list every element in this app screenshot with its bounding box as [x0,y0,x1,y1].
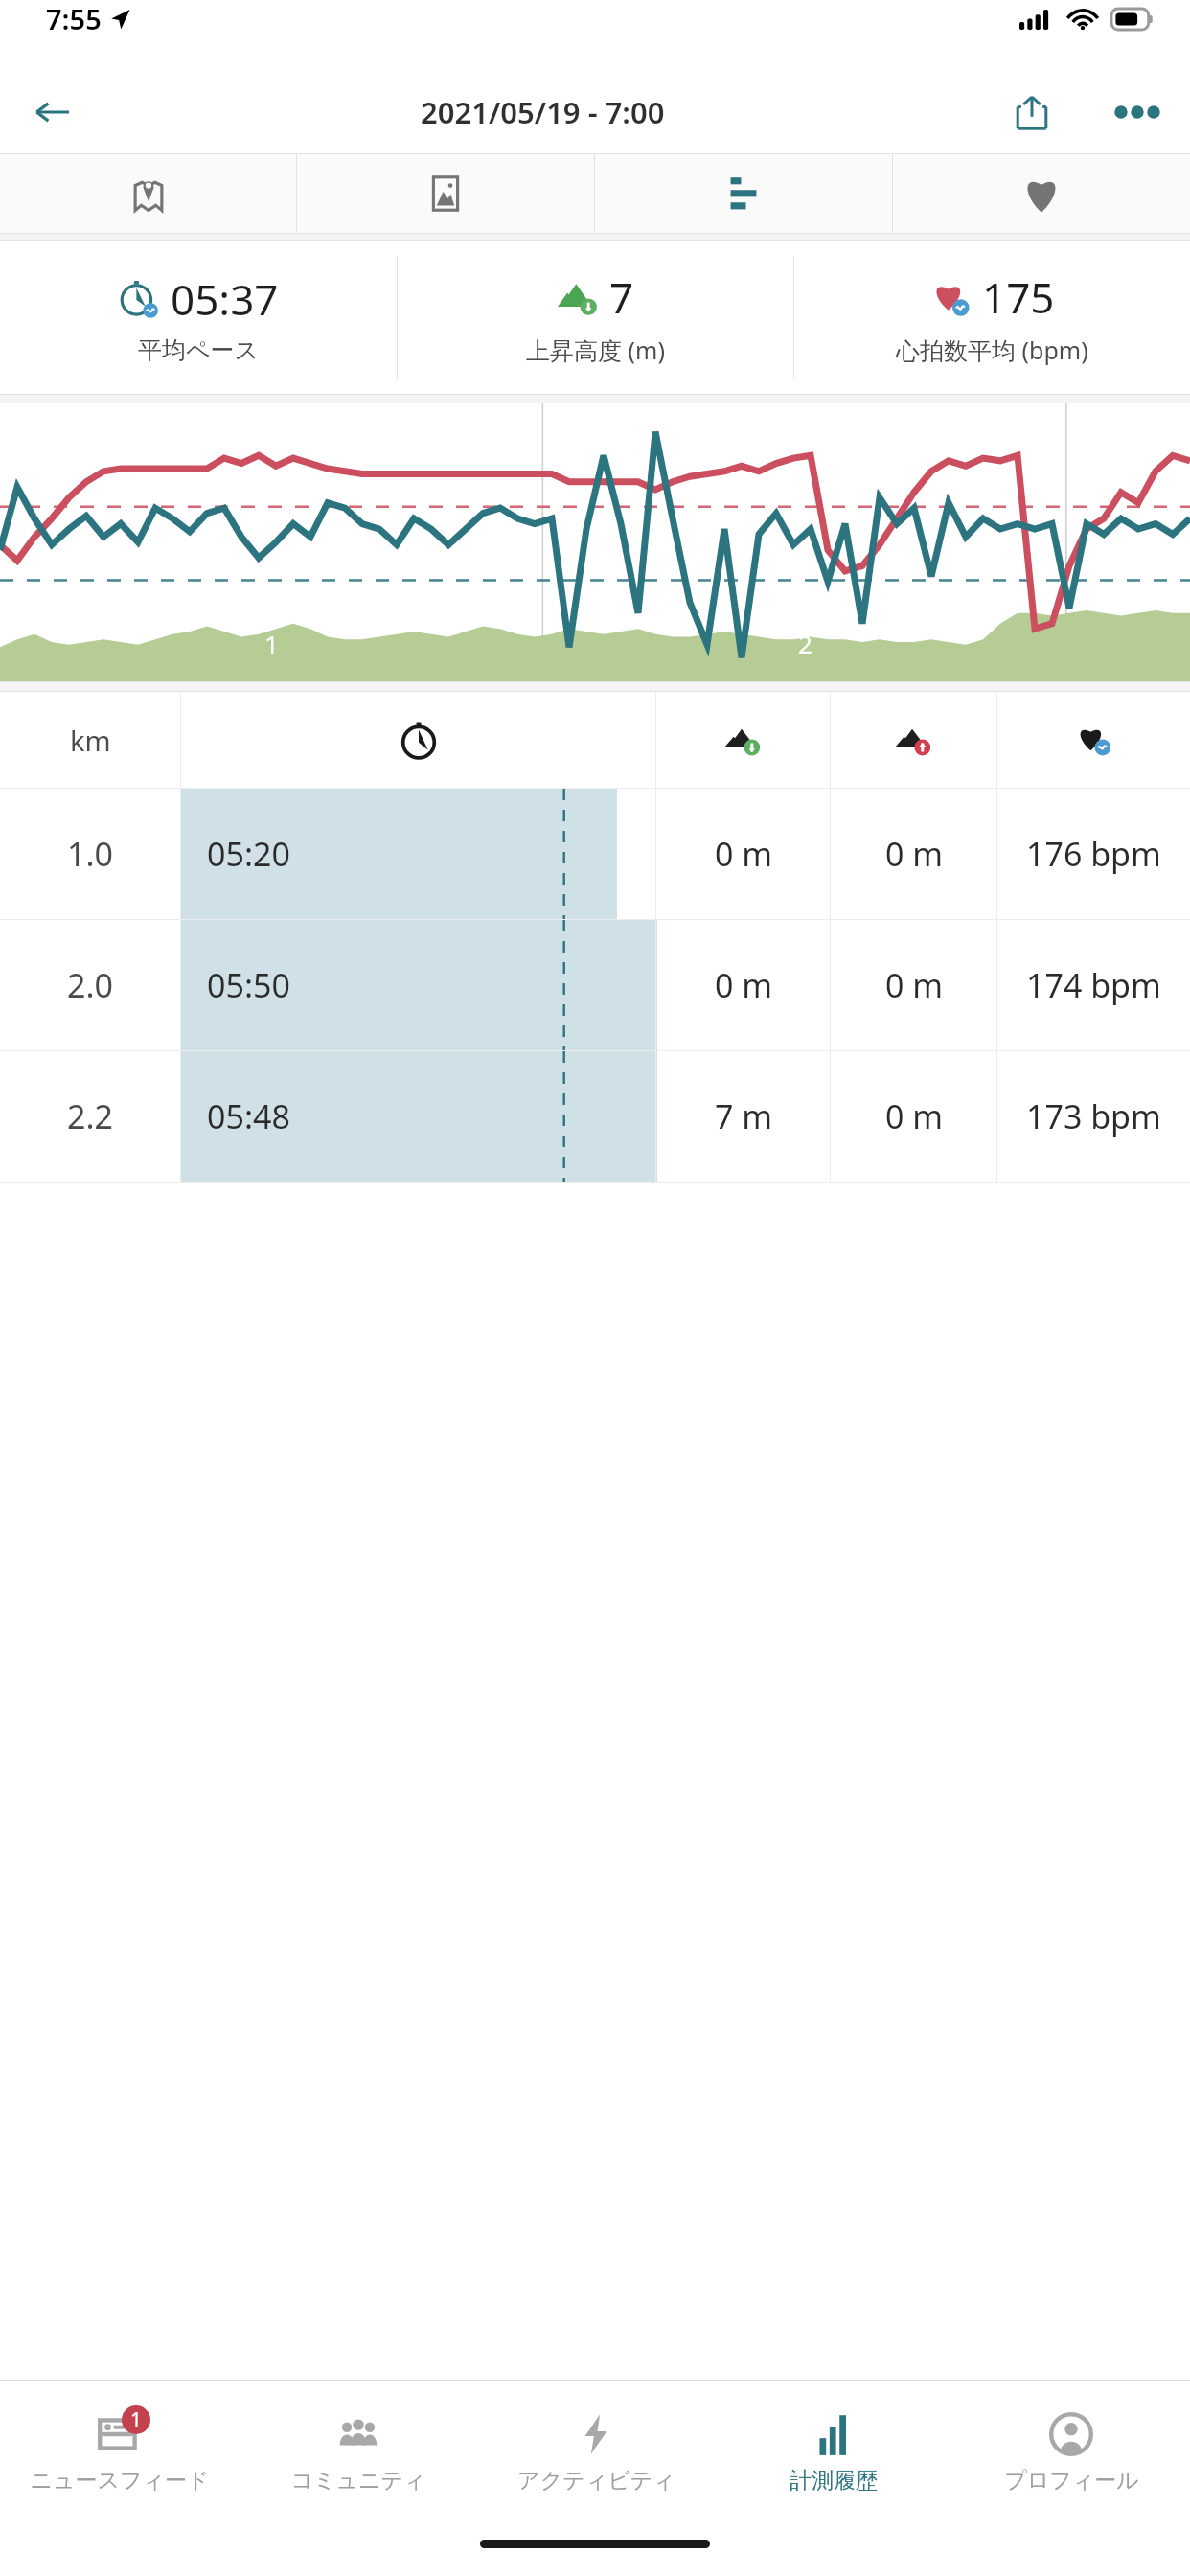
staticText: 計測履歴 [790,2467,878,2495]
staticText: 1 [130,2406,143,2434]
staticText: 7 m [715,1094,773,1138]
staticText: 7 [609,268,634,326]
staticText: 175 [982,268,1055,326]
staticText: 2.2 [67,1094,114,1138]
staticText: 0 m [885,832,944,876]
button[interactable]: 1.0 [0,789,1190,919]
staticText: 2.0 [67,963,114,1007]
staticText: 平均ペース [138,335,260,365]
button[interactable]: 175 [794,241,1190,394]
button[interactable]: プロフィール [952,2380,1190,2522]
button[interactable]: Back [0,71,105,153]
staticText: 174 bpm [1026,963,1161,1007]
button[interactable]: 05:37 [0,241,397,394]
staticText: 05:37 [171,270,279,328]
staticText: 0 m [715,832,773,876]
staticText: 2021/05/19 - 7:00 [421,92,665,132]
staticText: 05:50 [207,963,290,1007]
button[interactable]: 2.0 [0,920,1190,1050]
staticText: 上昇高度 (m) [526,333,665,366]
staticText: 1 [264,627,279,660]
button[interactable]: Charts [595,154,892,233]
staticText: 心拍数平均 (bpm) [896,333,1088,366]
staticText: ニュースフィード [30,2467,210,2495]
staticText: 0 m [885,1094,944,1138]
button[interactable]: 計測履歴 [715,2380,952,2522]
staticText: 176 bpm [1026,832,1161,876]
staticText: 0 m [885,963,944,1007]
button[interactable]: コミュニティ [239,2380,477,2522]
button[interactable]: Share [979,71,1085,153]
button[interactable]: Heart rate [893,154,1190,233]
staticText: コミュニティ [290,2467,426,2495]
button[interactable]: More options [1085,71,1190,153]
staticText: 173 bpm [1026,1094,1161,1138]
staticText: 2 [798,627,812,660]
button[interactable]: アクティビティ [477,2380,715,2522]
staticText: 0 m [715,963,773,1007]
staticText: 05:20 [207,832,290,876]
staticText: プロフィール [1004,2467,1139,2495]
staticText: km [70,722,111,759]
button[interactable]: Map [0,154,296,233]
staticText: 05:48 [207,1094,290,1138]
staticText: アクティビティ [517,2467,675,2495]
staticText: 7:55 [46,0,102,37]
button[interactable]: 2.2 [0,1051,1190,1182]
button[interactable]: Photos [297,154,594,233]
button[interactable]: 1 [0,2380,239,2522]
staticText: 1.0 [67,832,114,876]
button[interactable]: 7 [398,241,793,394]
